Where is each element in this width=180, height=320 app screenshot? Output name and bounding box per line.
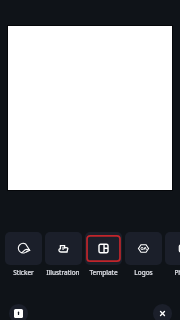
staticText: Sticker [13, 268, 34, 277]
staticText: Template [89, 268, 118, 277]
button[interactable] [45, 232, 82, 265]
button[interactable] [165, 232, 180, 265]
button[interactable] [85, 232, 122, 265]
staticText: Logos [134, 268, 153, 277]
staticText: Photo [174, 268, 180, 277]
button[interactable]: Close [153, 304, 172, 320]
staticText: Illustration [46, 268, 80, 277]
button[interactable] [125, 232, 162, 265]
button[interactable]: Lock [9, 304, 28, 320]
button[interactable] [5, 232, 42, 265]
